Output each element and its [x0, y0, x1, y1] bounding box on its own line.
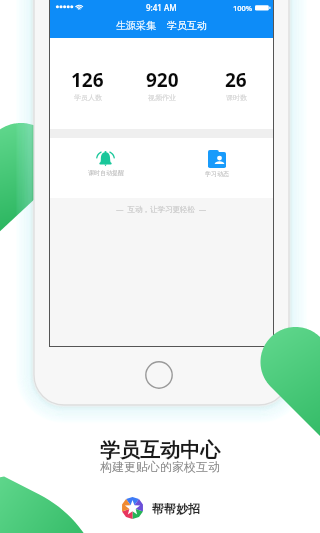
staticText: 126: [71, 67, 104, 93]
staticText: 构建更贴心的家校互动: [100, 459, 220, 474]
staticText: 26: [225, 67, 247, 93]
staticText: 帮帮妙招: [152, 501, 200, 516]
staticText: 视频作业: [148, 93, 176, 102]
button[interactable]: 生源采集: [113, 18, 159, 33]
staticText: 课时数: [226, 93, 247, 102]
staticText: 课时自动提醒: [88, 169, 124, 177]
button[interactable]: 920: [125, 67, 199, 102]
button[interactable]: 126: [50, 67, 125, 102]
button[interactable]: 课时自动提醒: [50, 150, 161, 177]
staticText: 920: [146, 67, 179, 93]
staticText: 100%: [233, 3, 253, 13]
button[interactable]: Home: [145, 361, 173, 389]
staticText: 学员互动中心: [100, 438, 220, 463]
staticText: 学习动态: [205, 170, 229, 178]
staticText: 9:41 AM: [146, 2, 177, 13]
button[interactable]: 帮帮妙招: [121, 497, 200, 519]
staticText: 学员互动: [167, 19, 207, 32]
staticText: — 互动，让学习更轻松 —: [116, 204, 207, 214]
button[interactable]: 26: [199, 67, 273, 102]
staticText: 生源采集: [116, 19, 156, 32]
button[interactable]: 学员互动: [164, 18, 210, 33]
staticText: 学员人数: [74, 93, 102, 102]
button[interactable]: 学习动态: [161, 150, 273, 178]
